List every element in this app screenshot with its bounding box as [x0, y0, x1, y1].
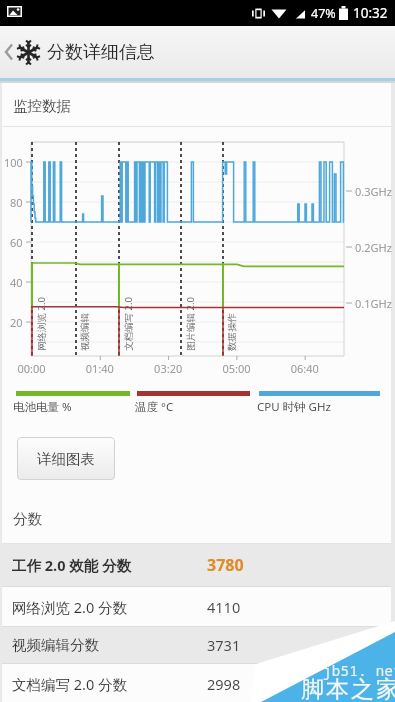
staticText: 工作 2.0 效能 分数 — [12, 555, 131, 575]
button[interactable]: 文档编写 2.0 分数 — [2, 664, 391, 702]
staticText: 4110 — [207, 597, 241, 617]
staticText: 分数详细信息 — [47, 41, 155, 64]
button[interactable]: Back — [0, 29, 17, 75]
staticText: 10:32 — [353, 4, 388, 22]
button[interactable]: 视频编辑分数 — [2, 627, 391, 663]
staticText: 2998 — [207, 674, 241, 694]
staticText: 网络浏览 2.0 分数 — [12, 597, 128, 617]
staticText: 3731 — [207, 635, 241, 655]
button[interactable]: 工作 2.0 效能 分数 — [2, 544, 391, 586]
button[interactable]: 网络浏览 2.0 分数 — [2, 587, 391, 626]
staticText: 3780 — [207, 554, 244, 576]
staticText: 视频编辑分数 — [12, 636, 99, 654]
staticText: 监控数据 — [13, 97, 71, 115]
staticText: 分数 — [13, 510, 42, 528]
button[interactable]: 详细图表 — [17, 437, 115, 480]
staticText: 详细图表 — [37, 450, 95, 468]
staticText: 文档编写 2.0 分数 — [12, 674, 128, 694]
staticText: 47% — [311, 5, 336, 22]
